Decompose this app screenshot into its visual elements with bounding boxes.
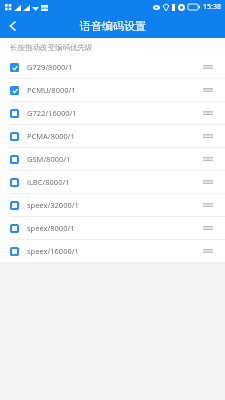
- button[interactable]: iLBC/8000/1: [0, 171, 225, 193]
- button[interactable]: G729/8000/1: [0, 56, 225, 78]
- staticText: 15:38: [203, 2, 221, 12]
- staticText: speex/8000/1: [27, 223, 75, 233]
- button[interactable]: G722/16000/1: [0, 102, 225, 124]
- staticText: 长按拖动改变编码优先级: [10, 43, 93, 52]
- staticText: speex/32000/1: [27, 200, 79, 210]
- button[interactable]: Reorder: [201, 175, 215, 189]
- button[interactable]: Reorder: [201, 221, 215, 235]
- button[interactable]: Reorder: [201, 198, 215, 212]
- button[interactable]: Reorder: [201, 129, 215, 143]
- staticText: iLBC/8000/1: [27, 177, 70, 187]
- button[interactable]: Reorder: [201, 60, 215, 74]
- staticText: speex/16000/1: [27, 246, 79, 256]
- button[interactable]: Reorder: [201, 83, 215, 97]
- staticText: PCMA/8000/1: [27, 131, 75, 141]
- button[interactable]: speex/16000/1: [0, 240, 225, 262]
- button[interactable]: GSM/8000/1: [0, 148, 225, 170]
- staticText: PCMU/8000/1: [27, 85, 76, 95]
- button[interactable]: Back: [0, 14, 24, 38]
- button[interactable]: speex/8000/1: [0, 217, 225, 239]
- button[interactable]: speex/32000/1: [0, 194, 225, 216]
- staticText: G729/8000/1: [27, 62, 73, 72]
- button[interactable]: Reorder: [201, 152, 215, 166]
- staticText: GSM/8000/1: [27, 154, 71, 164]
- button[interactable]: PCMA/8000/1: [0, 125, 225, 147]
- button[interactable]: Reorder: [201, 106, 215, 120]
- staticText: G722/16000/1: [27, 108, 77, 118]
- button[interactable]: Reorder: [201, 244, 215, 258]
- staticText: 语音编码设置: [80, 19, 146, 33]
- button[interactable]: PCMU/8000/1: [0, 79, 225, 101]
